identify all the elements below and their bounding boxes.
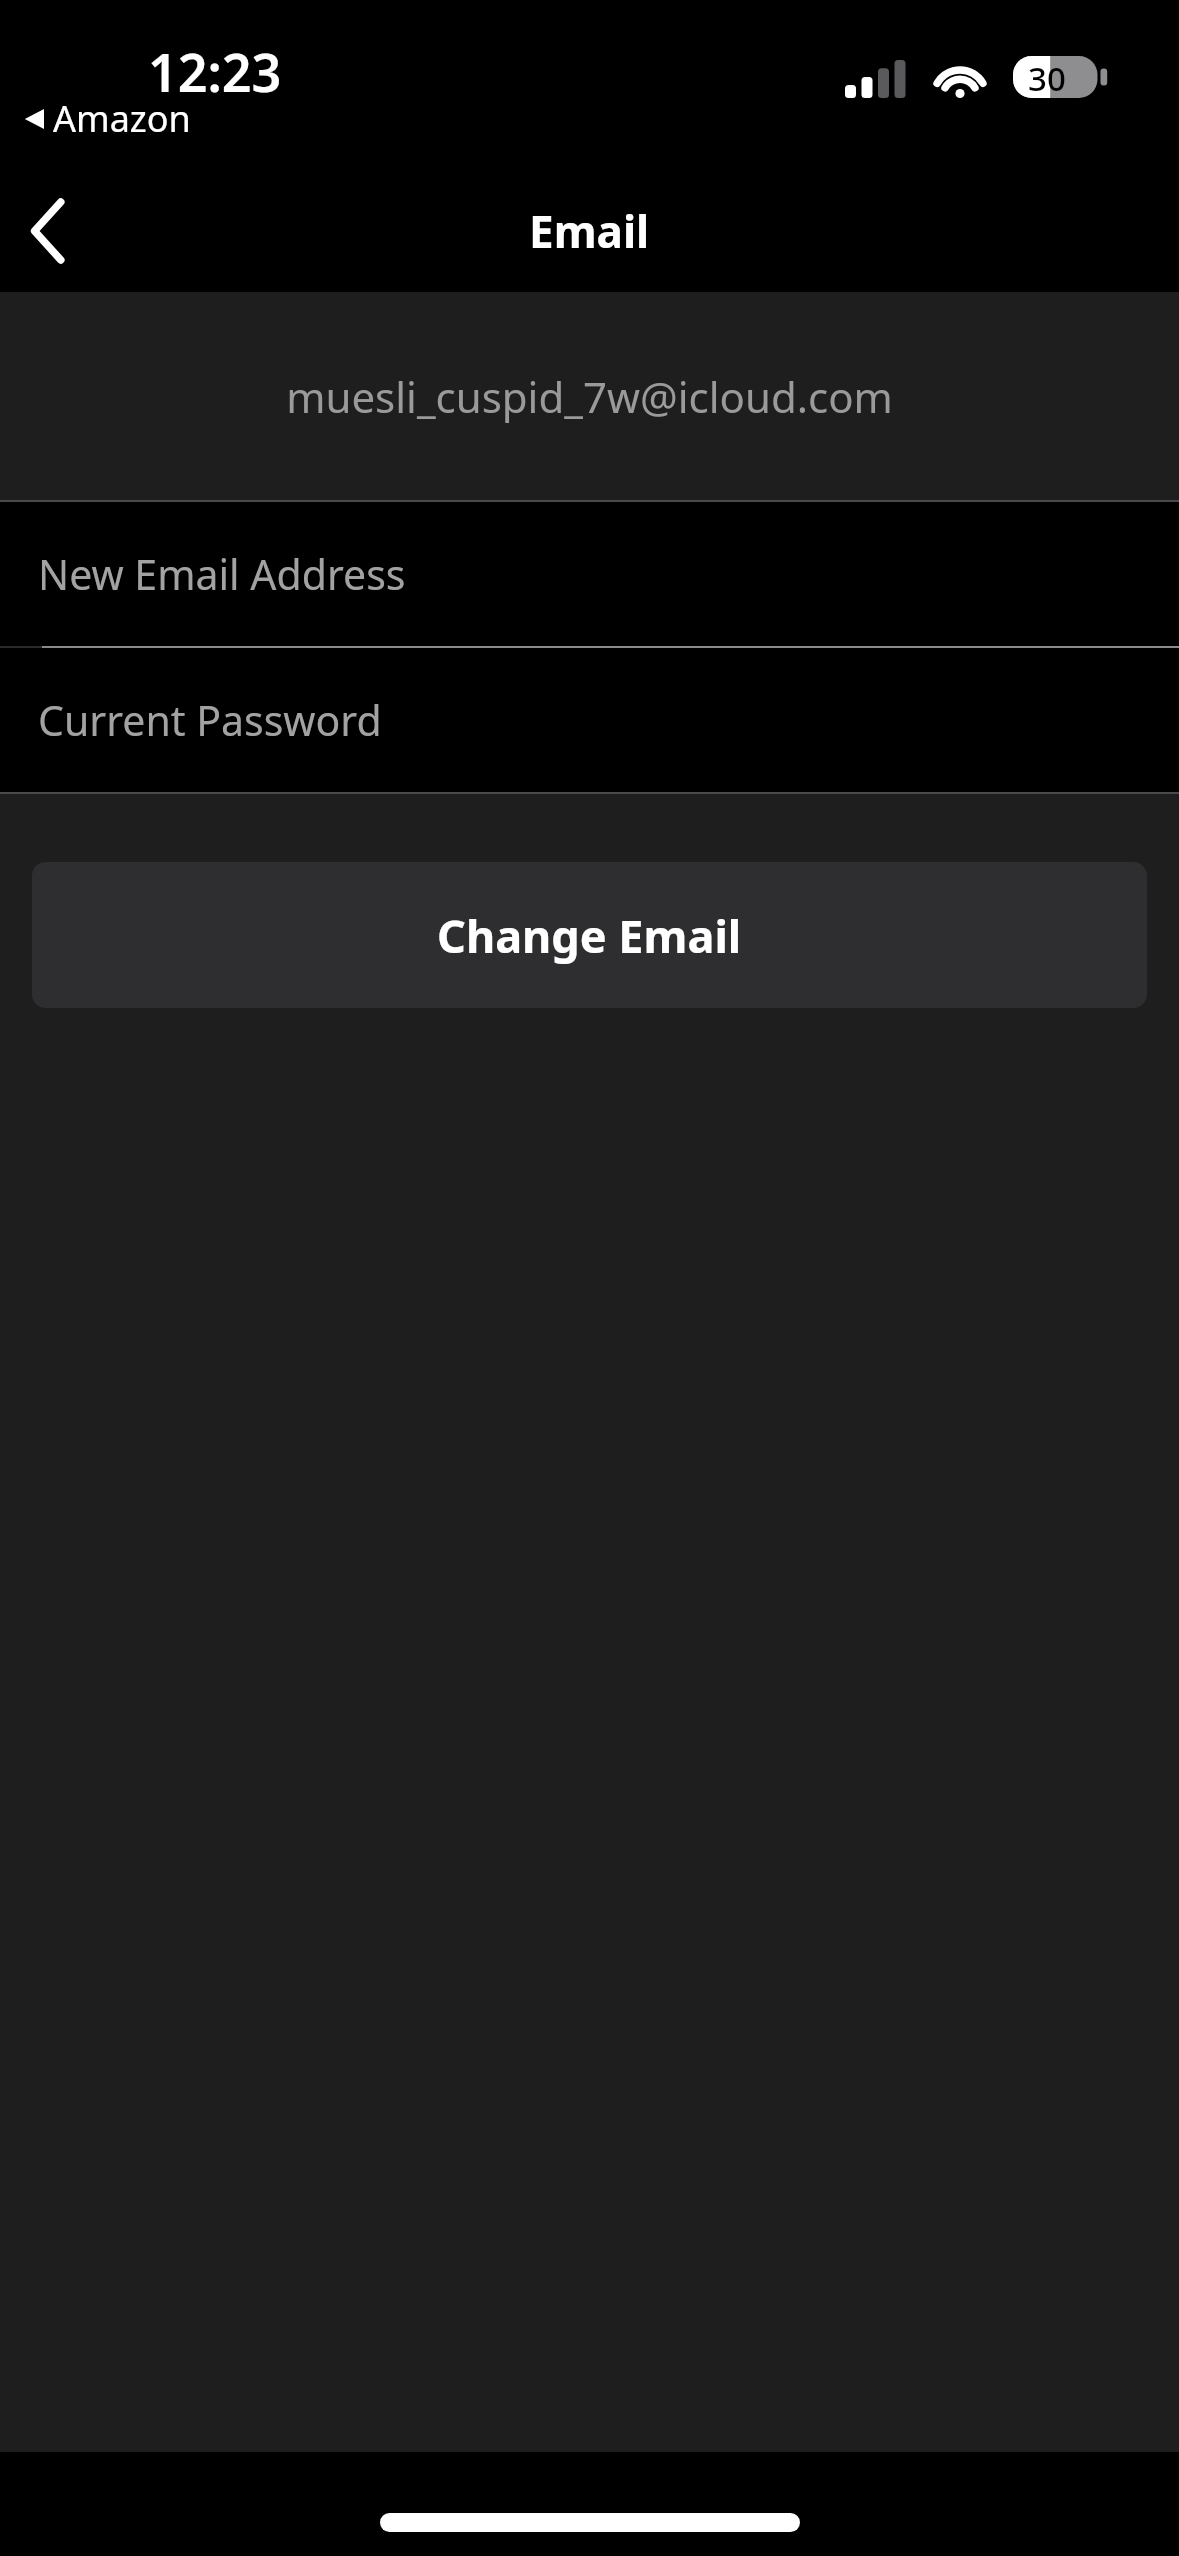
button[interactable]: Back: [0, 183, 96, 279]
staticText: 12:23: [148, 36, 282, 107]
staticText: 30: [1028, 56, 1066, 98]
button[interactable]: Change Email: [32, 862, 1147, 1008]
staticText: New Email Address: [38, 546, 406, 602]
staticText: Amazon: [53, 94, 191, 143]
staticText: Current Password: [38, 692, 382, 748]
button[interactable]: Amazon: [22, 92, 193, 145]
button[interactable]: New Email Address: [0, 502, 1179, 646]
staticText: Email: [529, 201, 650, 261]
staticText: muesli_cuspid_7w@icloud.com: [286, 368, 893, 425]
button[interactable]: Current Password: [0, 648, 1179, 792]
staticText: Change Email: [437, 905, 742, 966]
